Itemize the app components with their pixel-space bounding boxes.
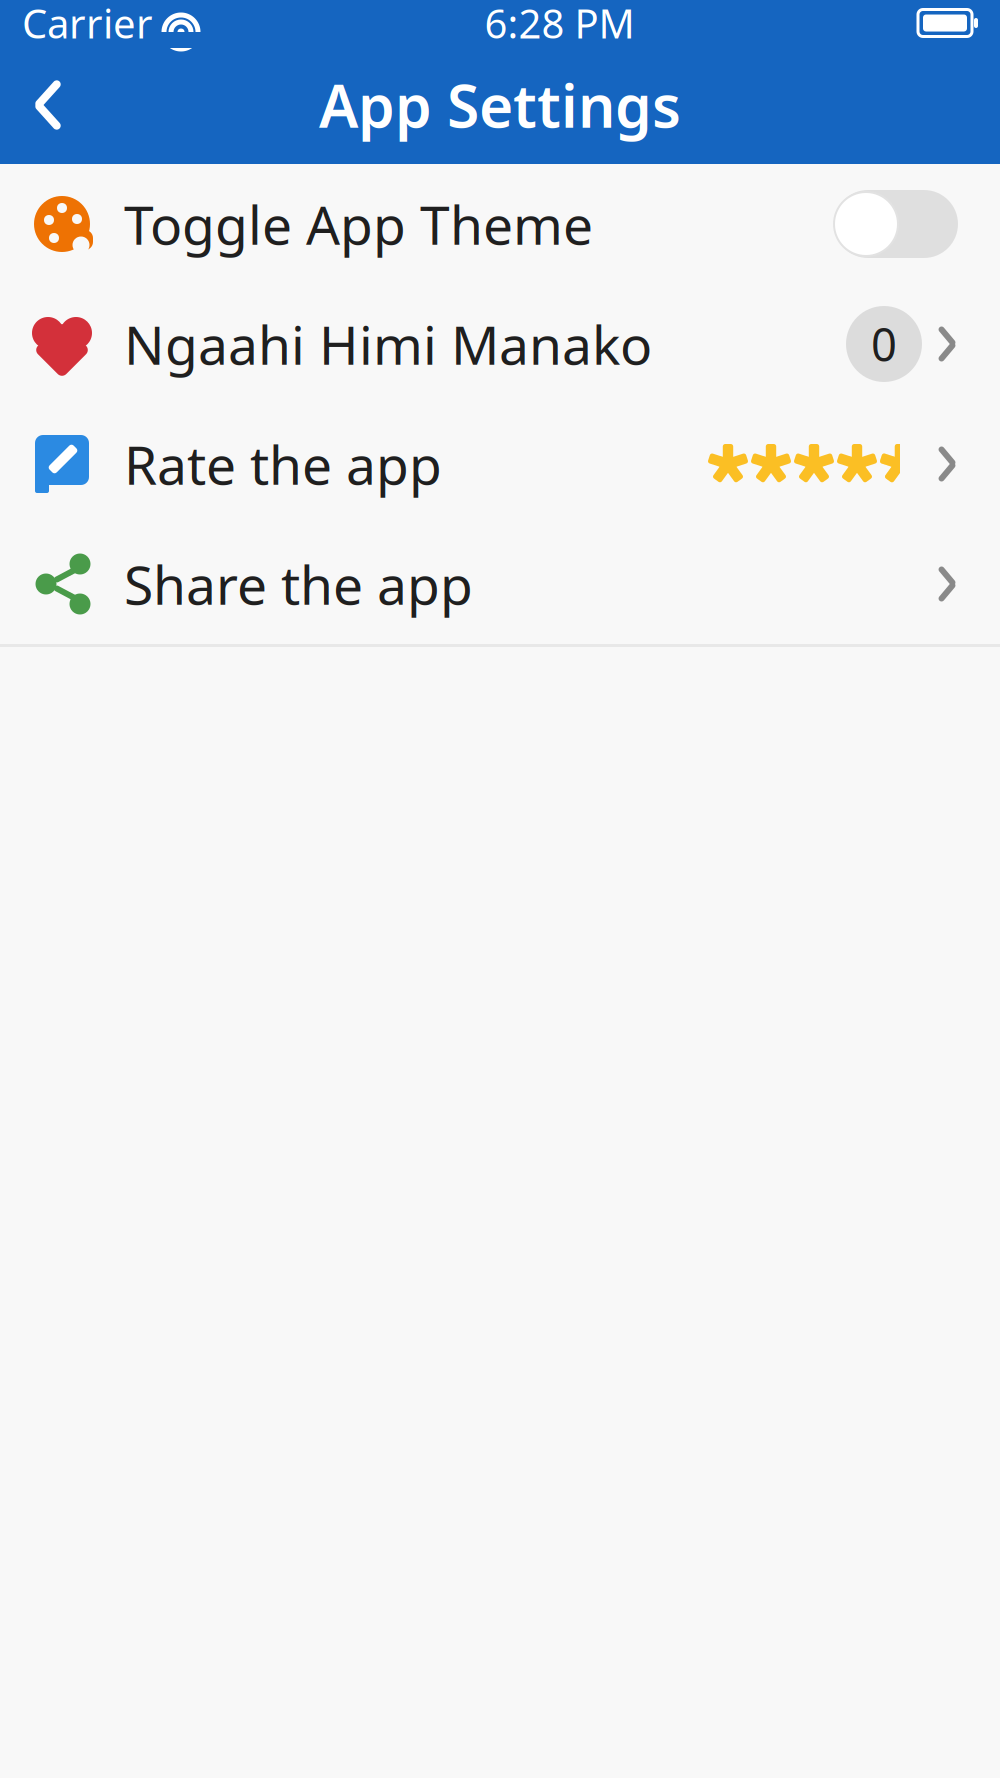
staticText: 0: [871, 314, 897, 374]
button[interactable]: Share the app: [0, 524, 1000, 644]
button[interactable]: Back: [0, 59, 96, 151]
staticText: Carrier: [22, 0, 153, 49]
button[interactable]: Rate the app: [0, 404, 1000, 524]
staticText: Rate the app: [124, 429, 442, 499]
staticText: App Settings: [319, 66, 681, 144]
button[interactable]: Ngaahi Himi Manako: [0, 284, 1000, 404]
staticText: 6:28 PM: [484, 0, 634, 49]
button[interactable]: Toggle App Theme: [0, 164, 1000, 284]
staticText: Share the app: [124, 549, 473, 619]
staticText: Ngaahi Himi Manako: [124, 309, 652, 379]
staticText: Toggle App Theme: [124, 189, 593, 259]
